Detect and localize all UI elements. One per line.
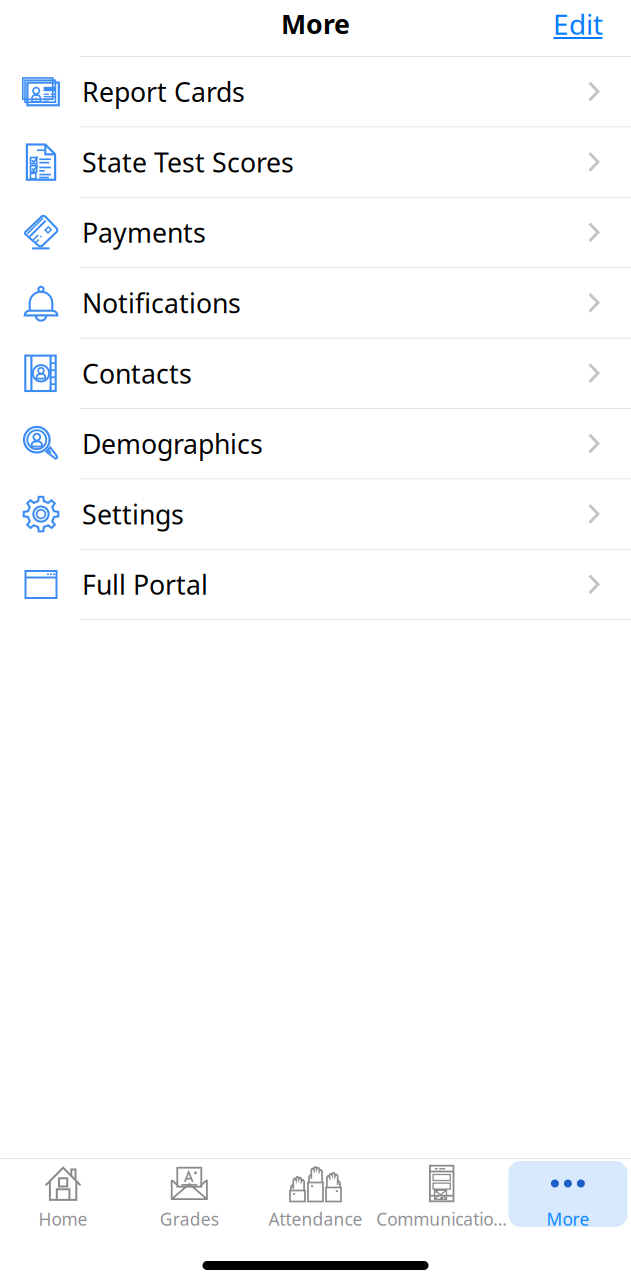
button[interactable]: Grades: [126, 1159, 252, 1229]
staticText: Report Cards: [82, 74, 245, 109]
button[interactable]: Attendance: [252, 1159, 379, 1229]
button[interactable]: Settings: [0, 479, 631, 550]
button[interactable]: State Test Scores: [0, 127, 631, 198]
button[interactable]: Edit: [553, 0, 603, 56]
staticText: State Test Scores: [82, 144, 294, 180]
button[interactable]: Full Portal: [0, 550, 631, 620]
staticText: Full Portal: [82, 567, 208, 602]
button[interactable]: Report Cards: [0, 57, 631, 127]
staticText: Payments: [82, 215, 206, 250]
staticText: Edit: [553, 5, 603, 43]
staticText: Contacts: [82, 356, 192, 391]
staticText: Settings: [82, 496, 184, 532]
staticText: Demographics: [82, 426, 263, 461]
staticText: Communicatio…: [376, 1207, 507, 1230]
staticText: More: [281, 6, 350, 41]
button[interactable]: Home: [0, 1159, 126, 1229]
staticText: Grades: [160, 1207, 219, 1230]
staticText: Notifications: [82, 285, 241, 321]
staticText: Home: [39, 1207, 88, 1230]
button[interactable]: Contacts: [0, 339, 631, 409]
staticText: Attendance: [268, 1207, 362, 1230]
button[interactable]: Payments: [0, 198, 631, 268]
button[interactable]: Notifications: [0, 268, 631, 339]
button[interactable]: Demographics: [0, 409, 631, 479]
button[interactable]: More: [505, 1159, 631, 1229]
button[interactable]: Communicatio…: [379, 1159, 505, 1229]
staticText: More: [546, 1207, 589, 1230]
